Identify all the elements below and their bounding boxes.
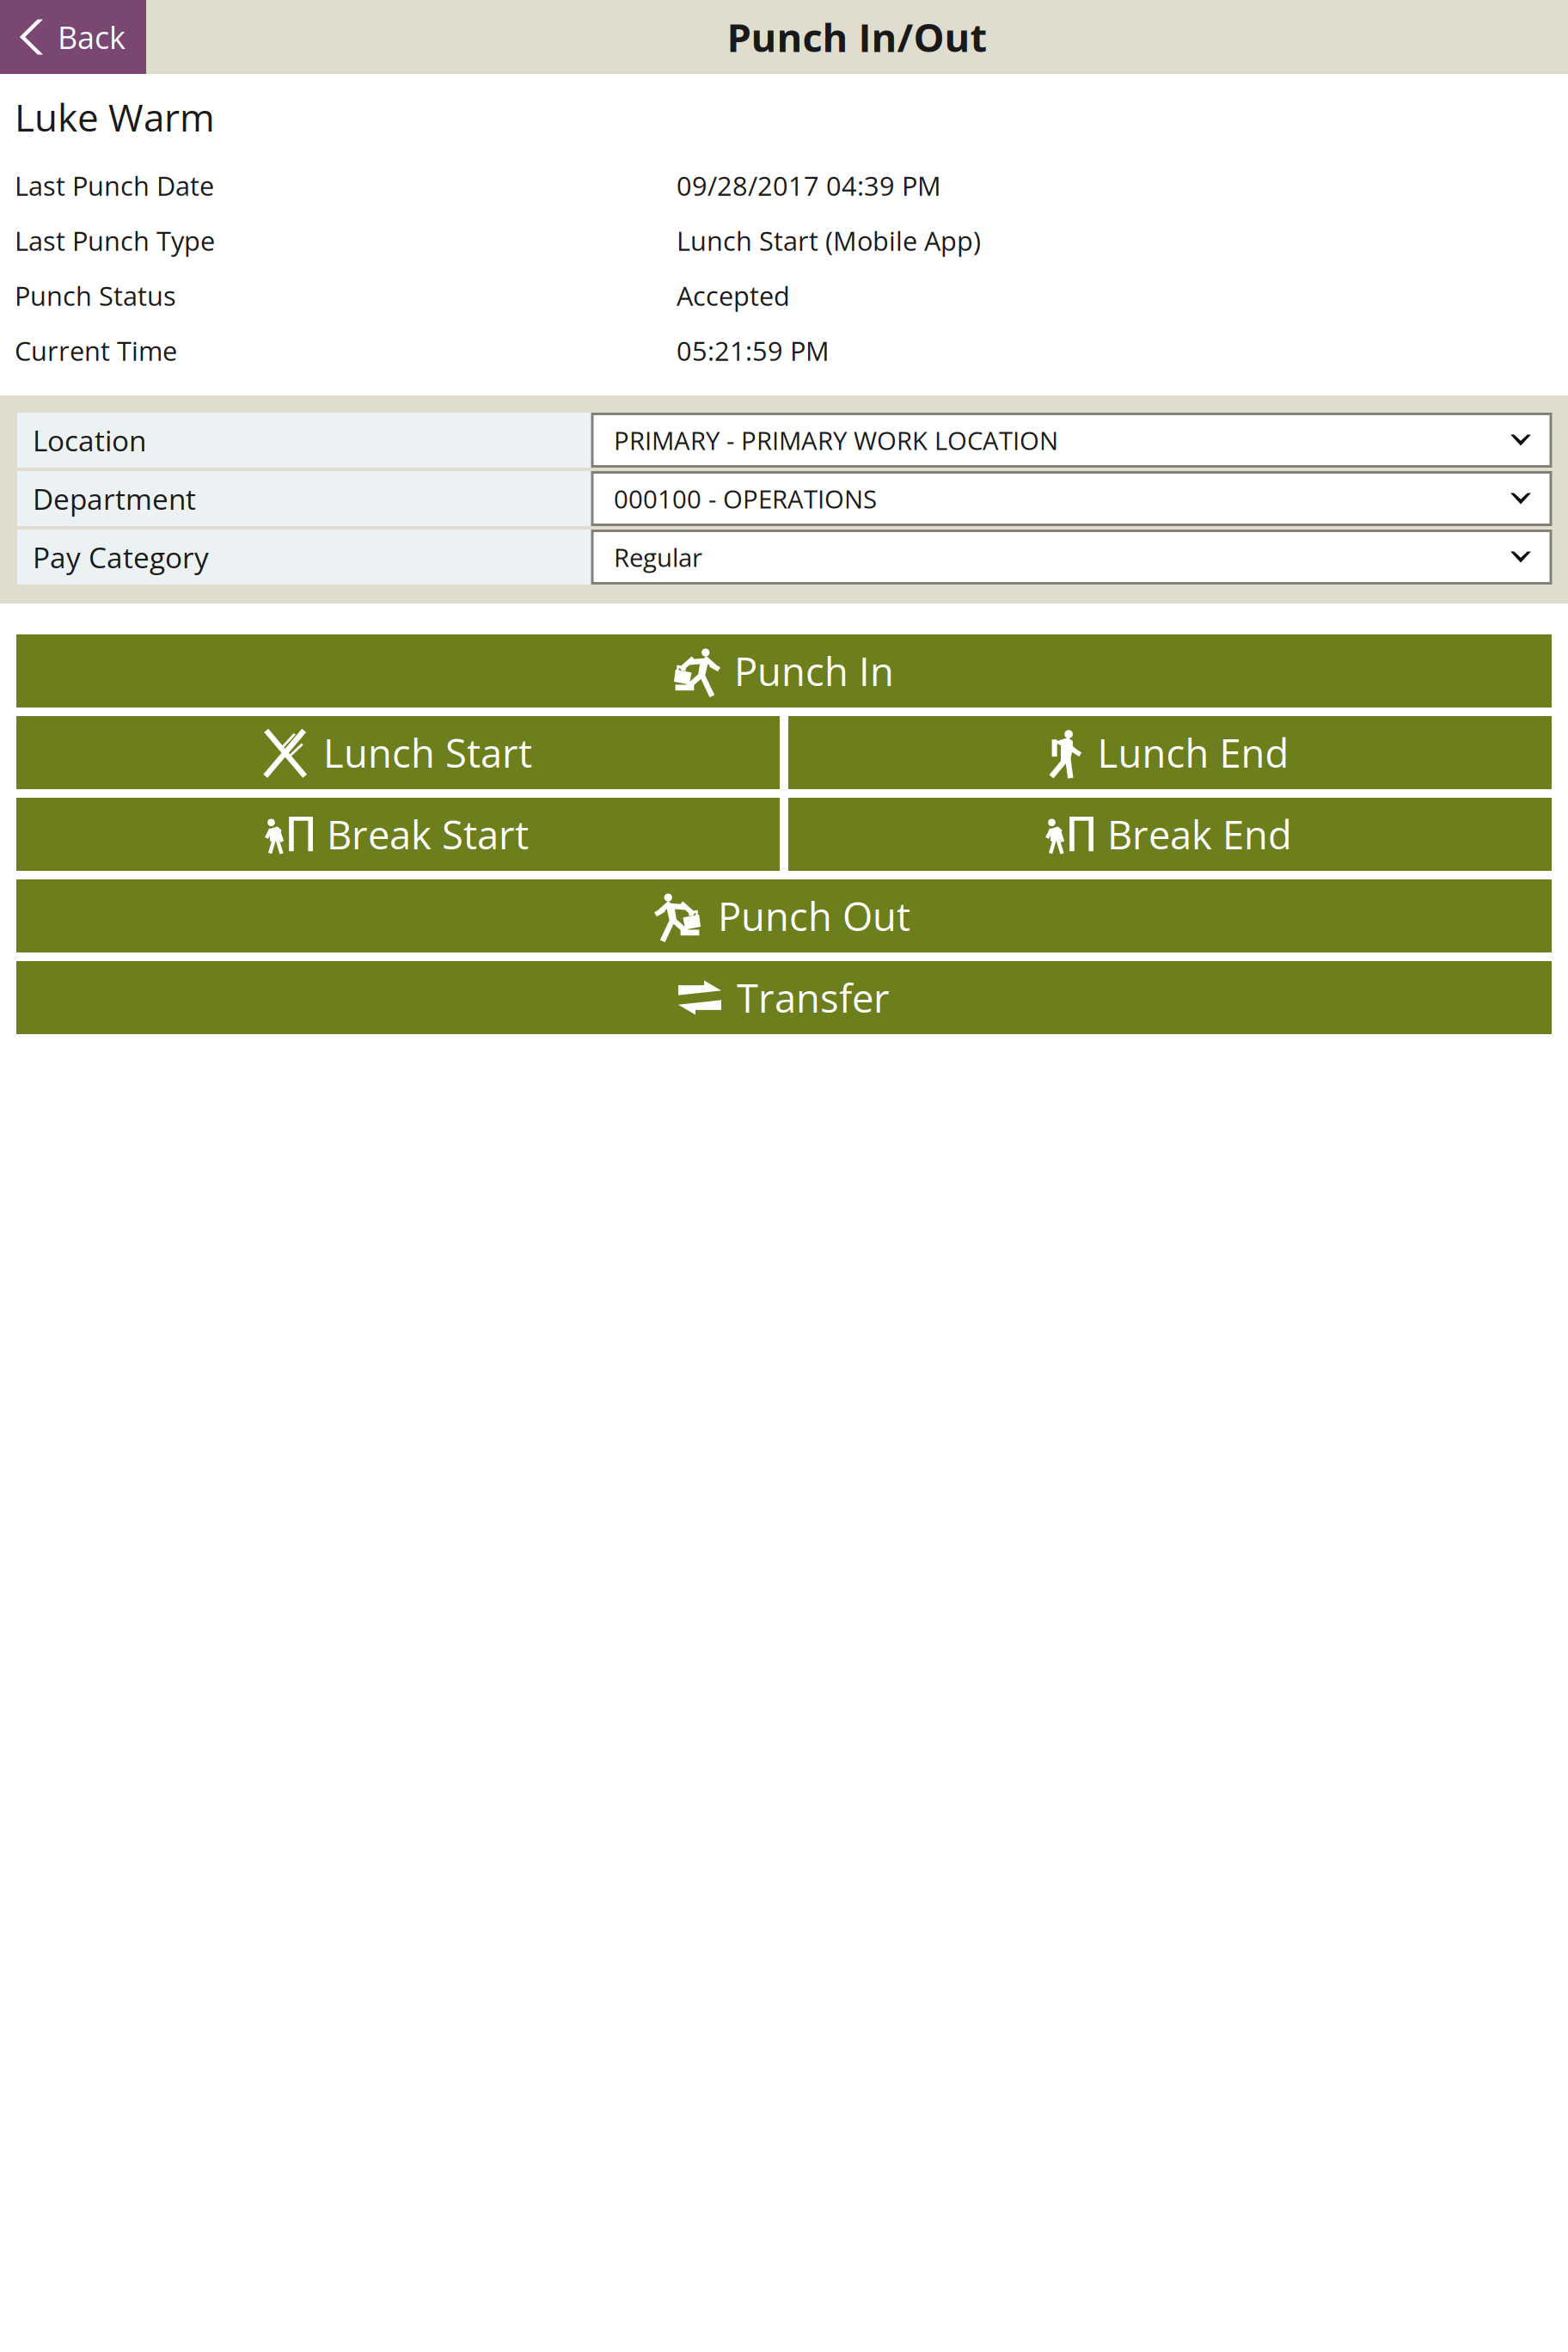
staticText: Luke Warm [15, 91, 215, 143]
button[interactable]: Punch Out [16, 879, 1552, 952]
staticText: Department [33, 479, 196, 518]
staticText: Break Start [327, 808, 529, 861]
button[interactable]: Break End [788, 798, 1552, 871]
staticText: Transfer [737, 971, 890, 1024]
button[interactable]: Punch In [16, 634, 1552, 707]
staticText: Accepted [677, 278, 790, 314]
staticText: Pay Category [33, 538, 209, 577]
button[interactable]: Regular [592, 531, 1551, 583]
staticText: Location [33, 421, 146, 460]
staticText: Punch Status [15, 278, 176, 314]
staticText: 09/28/2017 04:39 PM [677, 168, 941, 203]
staticText: PRIMARY - PRIMARY WORK LOCATION [614, 423, 1058, 457]
button[interactable]: 000100 - OPERATIONS [592, 472, 1551, 525]
staticText: Lunch End [1097, 726, 1289, 779]
staticText: Lunch Start [323, 726, 532, 779]
staticText: 000100 - OPERATIONS [614, 481, 877, 516]
staticText: Punch In/Out [727, 10, 987, 63]
staticText: Punch In [734, 644, 894, 697]
staticText: Current Time [15, 333, 177, 369]
button[interactable]: Lunch End [788, 716, 1552, 789]
staticText: Break End [1107, 808, 1292, 861]
staticText: Regular [614, 540, 702, 574]
staticText: Last Punch Date [15, 168, 214, 203]
button[interactable]: Lunch Start [16, 716, 780, 789]
button[interactable]: Transfer [16, 961, 1552, 1034]
button[interactable]: PRIMARY - PRIMARY WORK LOCATION [592, 414, 1551, 466]
button[interactable]: Break Start [16, 798, 780, 871]
staticText: Lunch Start (Mobile App) [677, 223, 981, 258]
staticText: 05:21:59 PM [677, 333, 830, 369]
button[interactable]: Back [0, 0, 146, 74]
staticText: Punch Out [718, 889, 910, 942]
staticText: Last Punch Type [15, 223, 215, 258]
staticText: Back [58, 16, 126, 58]
